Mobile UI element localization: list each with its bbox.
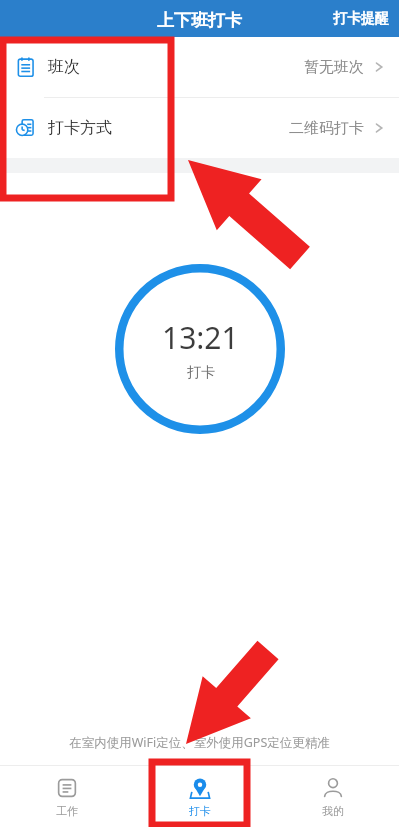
staticText: 打卡提醒 bbox=[333, 10, 389, 28]
button[interactable]: 打卡 bbox=[133, 766, 266, 827]
button[interactable]: 打卡方式 bbox=[0, 98, 399, 158]
staticText: 工作 bbox=[56, 804, 78, 818]
staticText: 在室内使用WiFi定位、室外使用GPS定位更精准 bbox=[0, 734, 399, 751]
button[interactable]: 工作 bbox=[0, 766, 133, 827]
staticText: 打卡 bbox=[189, 804, 211, 818]
button[interactable]: 班次 bbox=[0, 37, 399, 97]
staticText: 打卡方式 bbox=[48, 118, 112, 138]
staticText: 13:21 bbox=[162, 317, 239, 358]
button[interactable]: 我的 bbox=[266, 766, 399, 827]
staticText: 我的 bbox=[322, 804, 344, 818]
button[interactable]: 打卡提醒 bbox=[323, 4, 399, 34]
staticText: 暂无班次 bbox=[304, 58, 364, 77]
staticText: 班次 bbox=[48, 57, 80, 77]
staticText: 二维码打卡 bbox=[289, 119, 364, 138]
staticText: 上下班打卡 bbox=[157, 10, 242, 31]
button[interactable]: 13:21 bbox=[115, 264, 285, 434]
staticText: 打卡 bbox=[187, 364, 215, 382]
